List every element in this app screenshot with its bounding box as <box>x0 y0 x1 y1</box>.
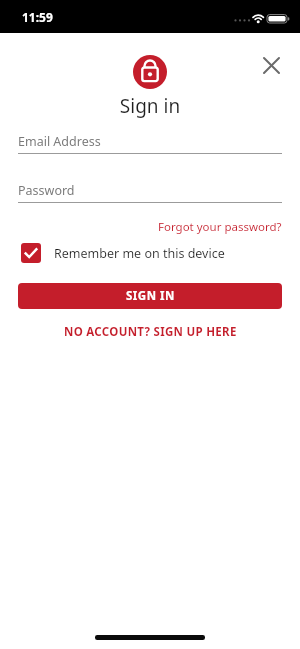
staticText: NO ACCOUNT? SIGN UP HERE <box>64 324 237 340</box>
button[interactable]: Forgot your password? <box>158 219 282 235</box>
staticText: Sign in <box>0 93 300 119</box>
staticText: 11:59 <box>22 9 53 25</box>
button[interactable] <box>256 50 286 80</box>
button[interactable]: NO ACCOUNT? SIGN UP HERE <box>64 324 237 340</box>
button[interactable]: SIGN IN <box>18 283 282 309</box>
staticText: SIGN IN <box>126 288 175 304</box>
button[interactable]: Email Address <box>18 128 282 155</box>
staticText: Password <box>18 182 75 199</box>
button[interactable]: Password <box>18 177 282 204</box>
staticText: Remember me on this device <box>54 245 225 262</box>
staticText: Email Address <box>18 133 101 150</box>
staticText: Forgot your password? <box>158 219 282 235</box>
button[interactable]: Remember me on this device <box>21 243 225 263</box>
